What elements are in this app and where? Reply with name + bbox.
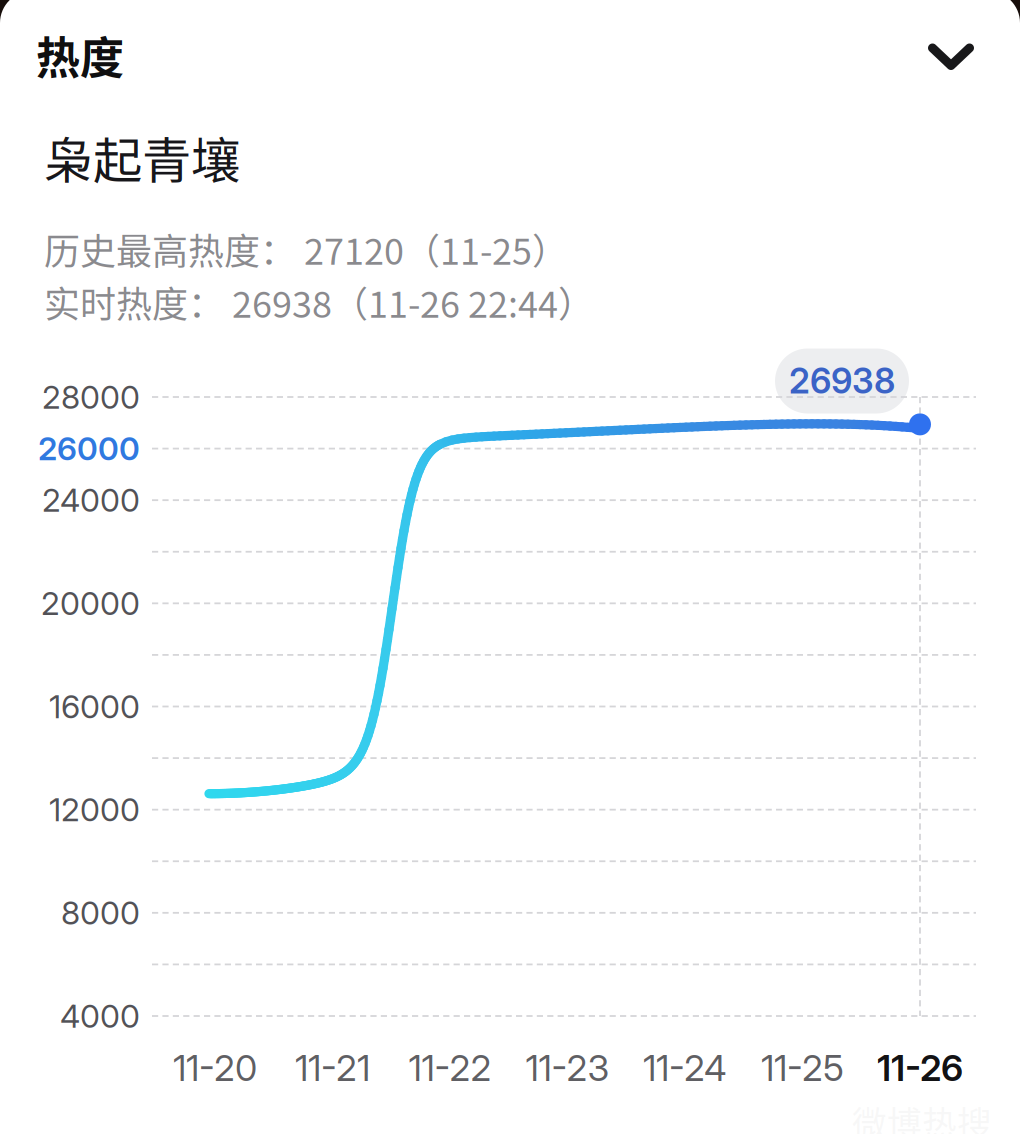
staticText: 11-25	[761, 1046, 844, 1090]
staticText: 8000	[61, 893, 140, 932]
staticText: 20000	[41, 584, 140, 623]
staticText: 11-23	[525, 1046, 609, 1090]
staticText: 12000	[49, 790, 140, 829]
staticText: 实时热度： 26938（11-26 22:44）	[44, 276, 594, 328]
staticText: 11-21	[295, 1046, 370, 1090]
button[interactable]: 收起	[896, 9, 1006, 105]
staticText: 11-20	[173, 1046, 257, 1090]
staticText: 16000	[49, 687, 140, 726]
staticText: 微博热搜	[852, 1097, 992, 1134]
staticText: 24000	[42, 481, 140, 519]
staticText: 11-24	[643, 1046, 727, 1090]
staticText: 11-26	[877, 1046, 963, 1090]
staticText: 4000	[60, 997, 140, 1035]
staticText: 26000	[38, 429, 140, 468]
staticText: 枭起青壤	[44, 121, 240, 193]
staticText: 热度	[36, 23, 124, 87]
staticText: 28000	[42, 378, 140, 416]
staticText: 历史最高热度： 27120（11-25）	[44, 223, 568, 275]
staticText: 11-22	[408, 1046, 491, 1090]
staticText: 26938	[789, 360, 895, 402]
